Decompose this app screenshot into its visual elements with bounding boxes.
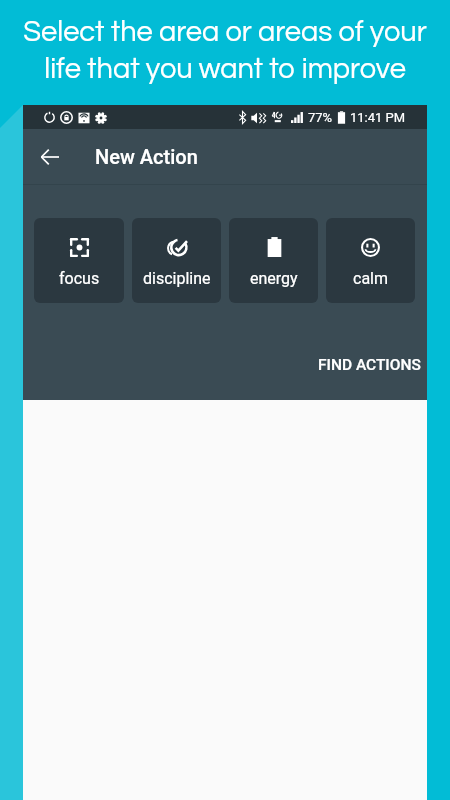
staticText: life that you want to improve xyxy=(44,54,406,84)
button[interactable]: Back xyxy=(31,138,69,176)
staticText: energy xyxy=(250,269,298,288)
staticText: FIND ACTIONS xyxy=(318,356,421,374)
staticText: 77% xyxy=(308,110,333,125)
button[interactable]: discipline xyxy=(132,218,221,303)
staticText: Select the area or areas of your xyxy=(23,17,427,47)
button[interactable]: calm xyxy=(326,218,415,303)
staticText: discipline xyxy=(143,269,211,288)
staticText: 11:41 PM xyxy=(350,110,406,125)
staticText: focus xyxy=(59,269,100,288)
staticText: calm xyxy=(353,269,388,288)
button[interactable]: energy xyxy=(229,218,318,303)
button[interactable]: focus xyxy=(34,218,124,303)
button[interactable]: FIND ACTIONS xyxy=(302,348,427,382)
staticText: New Action xyxy=(95,145,198,168)
